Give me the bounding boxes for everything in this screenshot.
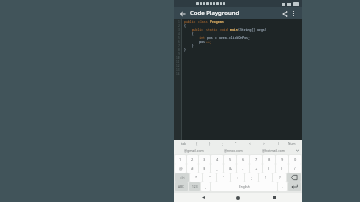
staticText: 6 — [178, 40, 180, 44]
staticText: : — [237, 175, 239, 180]
staticText: ; — [222, 142, 223, 146]
button[interactable]: ' — [217, 173, 230, 182]
staticText: Num — [288, 142, 296, 146]
button[interactable]: " — [229, 140, 243, 147]
staticText: # — [191, 166, 194, 171]
staticText: main — [230, 28, 238, 32]
button[interactable]: ( — [263, 164, 275, 173]
staticText: 13 — [176, 68, 180, 72]
staticText: } — [184, 48, 186, 52]
button[interactable]: , — [201, 182, 210, 191]
staticText: 9 — [281, 157, 284, 162]
button[interactable]: =\< — [175, 173, 189, 182]
staticText: Code Playground — [190, 9, 240, 17]
staticText: @hotmail.com — [262, 148, 285, 153]
staticText: ) — [278, 142, 279, 146]
staticText: 2 — [191, 157, 194, 162]
staticText: 8 — [268, 157, 271, 162]
button[interactable]: } — [203, 140, 216, 147]
button[interactable]: Share — [280, 9, 289, 18]
button[interactable]: 2 — [187, 155, 198, 164]
button[interactable]: Expand suggestions — [293, 147, 302, 154]
button[interactable]: 8 — [263, 155, 275, 164]
staticText: (String[] args) — [238, 28, 267, 32]
button[interactable]: ) — [271, 140, 285, 147]
button[interactable]: 1 — [175, 155, 186, 164]
staticText: 3 — [203, 157, 206, 162]
staticText: ABC — [178, 185, 185, 189]
button[interactable]: More options — [289, 9, 298, 18]
button[interactable]: 3 — [199, 155, 210, 164]
button[interactable]: @ — [175, 164, 186, 173]
staticText: 11 — [176, 60, 180, 64]
staticText: } — [184, 44, 194, 48]
button[interactable]: ; — [216, 140, 229, 147]
button[interactable]: @hotmail.com — [253, 147, 293, 154]
staticText: 123 — [192, 185, 198, 189]
button[interactable]: / — [289, 164, 301, 173]
button[interactable]: ) — [276, 164, 288, 173]
button[interactable]: * — [190, 173, 202, 182]
staticText: 0 — [294, 157, 297, 162]
staticText: < — [249, 142, 251, 146]
staticText: " — [209, 175, 211, 180]
button[interactable]: @nnox.com — [213, 147, 253, 154]
staticText: { — [184, 32, 194, 36]
button[interactable]: Recent apps — [267, 193, 281, 202]
button[interactable]: Home — [231, 193, 245, 202]
button[interactable]: English — [211, 182, 277, 191]
button[interactable]: { — [190, 140, 203, 147]
button[interactable]: 7 — [250, 155, 262, 164]
button[interactable]: Back — [178, 9, 187, 18]
button[interactable]: ABC — [175, 182, 188, 191]
staticText: + — [255, 166, 258, 171]
button[interactable]: 0 — [289, 155, 301, 164]
button[interactable]: 123 — [189, 182, 200, 191]
staticText: ++; — [206, 40, 212, 44]
button[interactable]: & — [224, 164, 236, 173]
staticText: , — [205, 184, 207, 189]
staticText: $ — [203, 166, 206, 171]
button[interactable]: Enter — [288, 182, 301, 191]
button[interactable]: Num — [285, 140, 299, 147]
button[interactable]: 4 — [211, 155, 223, 164]
staticText: - — [242, 166, 244, 171]
button[interactable]: Back — [196, 193, 210, 202]
staticText: 4 — [216, 157, 219, 162]
staticText: ' — [223, 175, 224, 180]
button[interactable]: tab — [177, 140, 190, 147]
staticText: ) — [281, 166, 283, 171]
button[interactable]: ! — [259, 173, 272, 182]
staticText: 7 — [255, 157, 258, 162]
button[interactable]: Backspace — [287, 173, 301, 182]
button[interactable]: ; — [245, 173, 258, 182]
button[interactable]: : — [231, 173, 244, 182]
staticText: @nnox.com — [224, 148, 243, 153]
button[interactable]: 6 — [237, 155, 249, 164]
button[interactable]: ? — [273, 173, 286, 182]
staticText: void — [220, 28, 230, 32]
button[interactable]: 5 — [224, 155, 236, 164]
button[interactable]: # — [187, 164, 198, 173]
staticText: ? — [279, 175, 281, 180]
button[interactable]: _ — [211, 164, 223, 173]
staticText: ; — [251, 175, 253, 180]
staticText: 1 — [178, 20, 180, 24]
staticText: 10 — [176, 56, 180, 60]
button[interactable]: < — [243, 140, 257, 147]
button[interactable]: @gmail.com — [174, 147, 213, 154]
staticText: static — [206, 28, 220, 32]
staticText: tab — [181, 142, 186, 146]
button[interactable]: 9 — [276, 155, 288, 164]
button[interactable]: " — [203, 173, 216, 182]
button[interactable]: + — [250, 164, 262, 173]
staticText: @ — [179, 166, 183, 171]
staticText: * — [195, 175, 198, 180]
button[interactable]: $ — [199, 164, 210, 173]
staticText: pos — [184, 40, 206, 44]
button[interactable]: > — [257, 140, 271, 147]
staticText: ! — [265, 175, 267, 180]
button[interactable]: - — [237, 164, 249, 173]
staticText: " — [235, 142, 237, 146]
